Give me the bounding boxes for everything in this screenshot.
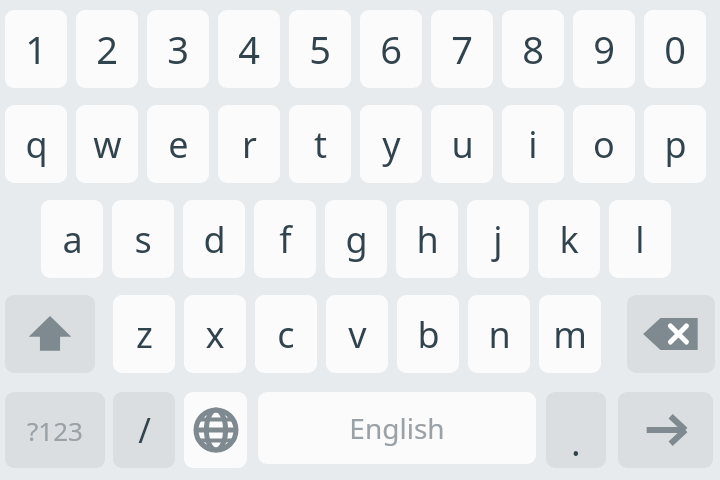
button[interactable]: Period bbox=[546, 392, 606, 468]
staticText: 9 bbox=[593, 23, 615, 75]
button[interactable]: w bbox=[76, 105, 138, 183]
staticText: p bbox=[664, 120, 687, 169]
staticText: r bbox=[242, 120, 257, 169]
button[interactable]: i bbox=[502, 105, 564, 183]
staticText: n bbox=[488, 310, 511, 359]
button[interactable]: a bbox=[41, 200, 103, 278]
staticText: w bbox=[93, 120, 122, 169]
staticText: k bbox=[559, 215, 579, 264]
button[interactable]: 4 bbox=[218, 10, 280, 88]
staticText: English bbox=[349, 409, 445, 447]
staticText: y bbox=[382, 120, 401, 169]
button[interactable]: 6 bbox=[360, 10, 422, 88]
button[interactable]: 7 bbox=[431, 10, 493, 88]
button[interactable]: m bbox=[539, 295, 601, 373]
button[interactable]: b bbox=[397, 295, 459, 373]
button[interactable]: 9 bbox=[573, 10, 635, 88]
button[interactable]: u bbox=[431, 105, 493, 183]
staticText: / bbox=[138, 407, 151, 453]
button[interactable]: g bbox=[325, 200, 387, 278]
staticText: h bbox=[416, 215, 439, 264]
button[interactable]: f bbox=[254, 200, 316, 278]
staticText: l bbox=[635, 215, 645, 264]
staticText: b bbox=[417, 310, 440, 359]
button[interactable]: x bbox=[184, 295, 246, 373]
button[interactable]: 3 bbox=[147, 10, 209, 88]
staticText: u bbox=[451, 120, 474, 169]
staticText: t bbox=[314, 120, 327, 169]
button[interactable]: n bbox=[468, 295, 530, 373]
button[interactable]: p bbox=[644, 105, 706, 183]
button[interactable]: 0 bbox=[644, 10, 706, 88]
button[interactable]: r bbox=[218, 105, 280, 183]
staticText: i bbox=[528, 120, 538, 169]
staticText: 2 bbox=[96, 23, 118, 75]
staticText: o bbox=[593, 120, 615, 169]
button[interactable]: English bbox=[258, 392, 536, 464]
button[interactable]: 5 bbox=[289, 10, 351, 88]
button[interactable]: y bbox=[360, 105, 422, 183]
button[interactable]: Shift bbox=[5, 295, 95, 373]
button[interactable]: q bbox=[5, 105, 67, 183]
staticText: c bbox=[277, 310, 295, 359]
staticText: 0 bbox=[664, 23, 686, 75]
staticText: x bbox=[205, 310, 225, 359]
staticText: 8 bbox=[522, 23, 544, 75]
staticText: j bbox=[493, 215, 503, 264]
button[interactable]: s bbox=[112, 200, 174, 278]
button[interactable]: o bbox=[573, 105, 635, 183]
button[interactable]: Switch language bbox=[184, 392, 247, 468]
button[interactable]: e bbox=[147, 105, 209, 183]
staticText: f bbox=[279, 215, 292, 264]
button[interactable]: Enter bbox=[618, 392, 713, 468]
staticText: q bbox=[25, 120, 48, 169]
button[interactable]: Backspace bbox=[627, 295, 715, 373]
button[interactable]: h bbox=[396, 200, 458, 278]
button[interactable]: 2 bbox=[76, 10, 138, 88]
staticText: 5 bbox=[309, 23, 331, 75]
staticText: e bbox=[168, 120, 189, 169]
staticText: 4 bbox=[238, 23, 260, 75]
button[interactable]: d bbox=[183, 200, 245, 278]
staticText: 3 bbox=[167, 23, 189, 75]
staticText: 1 bbox=[25, 23, 47, 75]
staticText: v bbox=[348, 310, 367, 359]
staticText: 7 bbox=[451, 23, 473, 75]
staticText: d bbox=[203, 215, 226, 264]
staticText: 6 bbox=[380, 23, 402, 75]
staticText: z bbox=[136, 310, 153, 359]
button[interactable]: / bbox=[113, 392, 175, 468]
staticText: g bbox=[345, 215, 368, 264]
staticText: s bbox=[134, 215, 152, 264]
button[interactable]: j bbox=[467, 200, 529, 278]
staticText: ?123 bbox=[27, 413, 83, 448]
button[interactable]: k bbox=[538, 200, 600, 278]
button[interactable]: l bbox=[609, 200, 671, 278]
button[interactable]: 1 bbox=[5, 10, 67, 88]
button[interactable]: v bbox=[326, 295, 388, 373]
button[interactable]: t bbox=[289, 105, 351, 183]
button[interactable]: c bbox=[255, 295, 317, 373]
staticText: . bbox=[571, 418, 581, 467]
button[interactable]: 8 bbox=[502, 10, 564, 88]
staticText: a bbox=[62, 215, 83, 264]
button[interactable]: ?123 bbox=[5, 392, 105, 468]
staticText: m bbox=[553, 310, 587, 359]
button[interactable]: z bbox=[113, 295, 175, 373]
